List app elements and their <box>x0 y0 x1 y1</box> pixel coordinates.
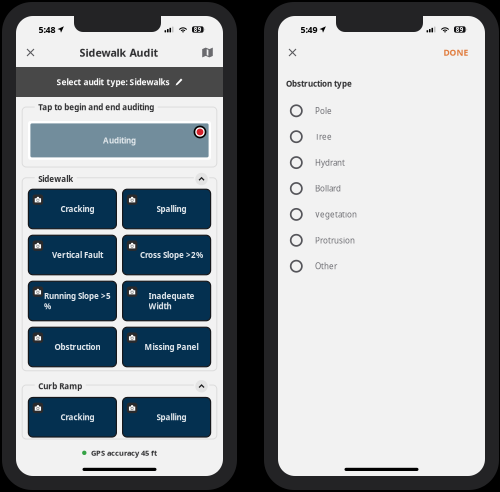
button[interactable]: Cracking <box>28 397 116 437</box>
staticText: 89 <box>194 25 202 33</box>
staticText: Obstruction type <box>286 78 352 89</box>
button[interactable]: Tree <box>278 124 485 150</box>
staticText: 5:49 <box>300 24 317 35</box>
staticText: Cracking <box>60 204 94 214</box>
staticText: Pole <box>315 106 332 116</box>
staticText: Vertical Fault <box>52 250 103 260</box>
button[interactable]: Obstruction <box>28 327 116 367</box>
staticText: Auditing <box>103 135 136 146</box>
button[interactable]: Cracking <box>28 189 116 229</box>
button[interactable]: Auditing <box>28 121 211 160</box>
button[interactable]: Other <box>278 253 485 279</box>
button[interactable]: Running Slope >5 % <box>28 281 116 321</box>
button[interactable]: Vegetation <box>278 201 485 227</box>
staticText: Spalling <box>157 412 187 422</box>
button[interactable]: Spalling <box>123 189 211 229</box>
staticText: Running Slope >5 % <box>44 291 111 311</box>
staticText: Tap to begin and end auditing <box>38 102 154 112</box>
staticText: Tree <box>315 131 332 142</box>
staticText: Cross Slope >2% <box>140 250 203 260</box>
staticText: Sidewalk Audit <box>79 46 158 59</box>
button[interactable]: Collapse Curb Ramp <box>194 380 209 392</box>
button[interactable]: Vertical Fault <box>28 235 116 275</box>
staticText: 5:48 <box>38 24 55 35</box>
staticText: 89 <box>456 25 464 33</box>
button[interactable]: Bollard <box>278 176 485 201</box>
button[interactable]: Pole <box>278 98 485 124</box>
button[interactable]: Close <box>19 40 41 64</box>
staticText: Other <box>315 261 337 271</box>
staticText: Inadequate Width <box>149 291 195 311</box>
button[interactable]: Map <box>196 40 218 64</box>
staticText: Obstruction <box>54 342 100 352</box>
button[interactable]: Collapse Sidewalk <box>194 173 209 185</box>
staticText: Cracking <box>60 412 94 422</box>
button[interactable]: Hydrant <box>278 150 485 176</box>
staticText: GPS accuracy 45 ft <box>91 448 157 458</box>
button[interactable]: Cross Slope >2% <box>123 235 211 275</box>
button[interactable]: Inadequate Width <box>123 281 211 321</box>
button[interactable]: Close <box>281 40 303 64</box>
staticText: DONE <box>443 47 468 58</box>
button[interactable]: DONE <box>437 40 480 64</box>
staticText: Vegetation <box>315 209 357 220</box>
button[interactable]: Missing Panel <box>123 327 211 367</box>
button[interactable]: Spalling <box>123 397 211 437</box>
staticText: Missing Panel <box>145 342 199 352</box>
staticText: Select audit type: Sidewalks <box>57 77 170 87</box>
button[interactable]: Protrusion <box>278 227 485 253</box>
button[interactable]: Select audit type: Sidewalks <box>16 67 223 97</box>
staticText: Protrusion <box>315 235 355 245</box>
staticText: Hydrant <box>315 157 345 168</box>
staticText: Spalling <box>157 204 187 214</box>
staticText: Sidewalk <box>38 174 73 184</box>
staticText: Curb Ramp <box>38 381 82 391</box>
staticText: Bollard <box>315 183 341 194</box>
